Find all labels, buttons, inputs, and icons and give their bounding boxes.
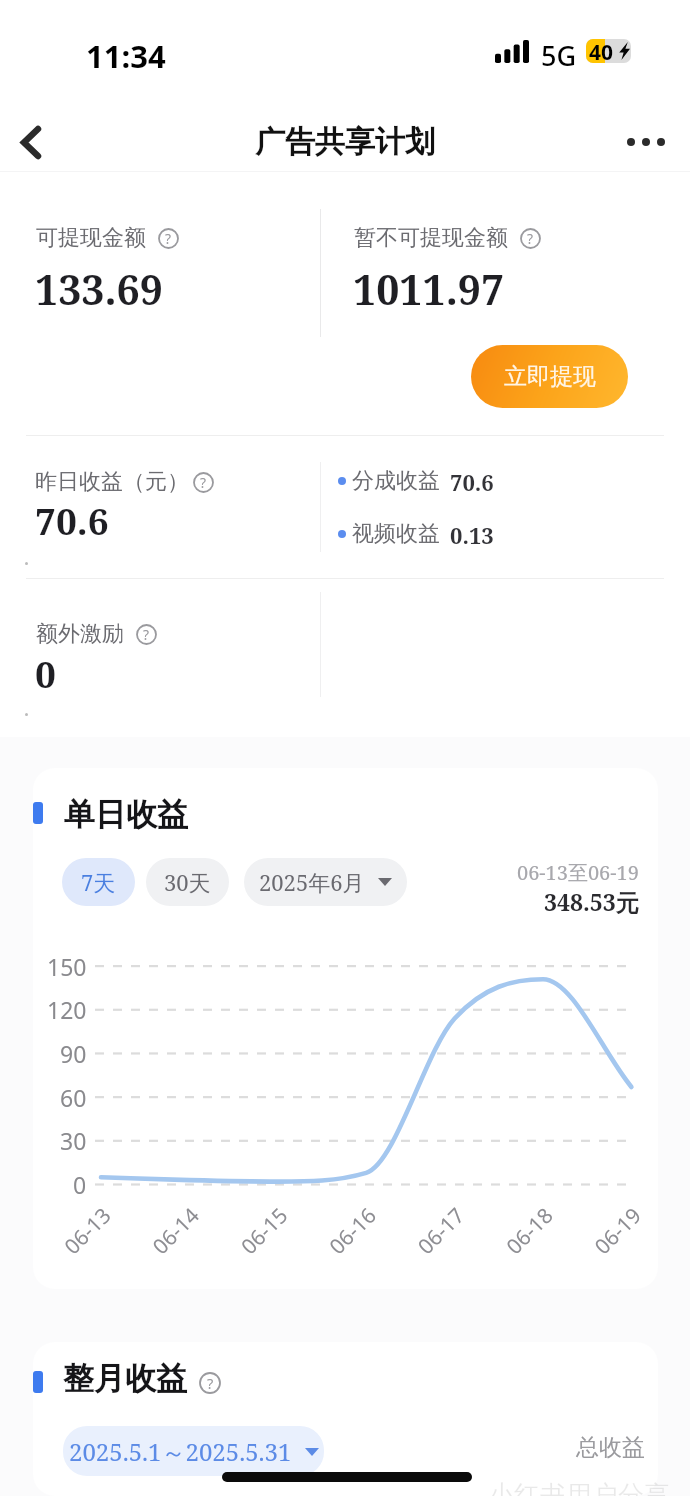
button[interactable]: 2025.5.1～2025.5.31 — [63, 1426, 324, 1476]
button[interactable]: 30天 — [146, 858, 229, 906]
staticText: 视频收益 — [352, 520, 440, 548]
staticText: 单日收益 — [64, 795, 188, 834]
staticText: 70.6 — [35, 495, 109, 545]
staticText: 0.13 — [450, 520, 494, 550]
staticText: 可提现金额 — [36, 224, 146, 252]
staticText: 40 — [589, 39, 614, 62]
staticText: 11:34 — [86, 35, 166, 77]
staticText: 2025年6月 — [259, 867, 365, 897]
button[interactable]: 立即提现 — [471, 345, 628, 408]
staticText: 133.69 — [35, 261, 163, 317]
staticText: 额外激励 — [36, 620, 124, 648]
button[interactable]: 7天 — [62, 858, 135, 906]
staticText: ? — [143, 625, 150, 644]
staticText: 昨日收益（元） — [35, 468, 189, 496]
staticText: 分成收益 — [352, 467, 440, 495]
staticText: 整月收益 — [63, 1359, 187, 1398]
button[interactable]: More options — [610, 106, 682, 178]
staticText: 7天 — [81, 867, 116, 897]
staticText: 立即提现 — [504, 362, 596, 391]
button[interactable]: 2025年6月 — [244, 858, 407, 906]
staticText: 70.6 — [450, 467, 494, 497]
staticText: 2025.5.1～2025.5.31 — [69, 1435, 292, 1468]
staticText: 30天 — [164, 867, 211, 897]
staticText: 06-13至06-19 — [517, 859, 639, 886]
staticText: 小红书用户分享 — [488, 1479, 670, 1496]
staticText: ? — [527, 229, 534, 248]
staticText: 暂不可提现金额 — [354, 224, 508, 252]
staticText: ? — [207, 1373, 214, 1393]
button[interactable]: Back — [0, 111, 62, 173]
staticText: ? — [165, 229, 172, 248]
staticText: 348.53元 — [544, 886, 639, 917]
staticText: 1011.97 — [353, 261, 505, 317]
staticText: 0 — [35, 648, 56, 698]
staticText: 广告共享计划 — [255, 123, 435, 161]
staticText: 总收益 — [576, 1433, 645, 1462]
staticText: 5G — [541, 37, 577, 74]
staticText: ? — [200, 473, 207, 492]
